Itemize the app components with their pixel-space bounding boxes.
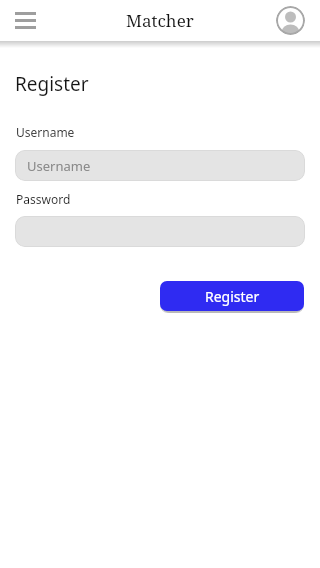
staticText: Username	[27, 157, 91, 175]
button[interactable]	[15, 216, 305, 247]
staticText: Register	[205, 287, 260, 306]
staticText: Matcher	[126, 9, 194, 32]
button[interactable]	[15, 12, 36, 29]
button[interactable]: Register	[160, 281, 304, 311]
button[interactable]: Username	[15, 150, 305, 181]
staticText: Password	[16, 191, 71, 207]
staticText: Register	[15, 71, 89, 97]
button[interactable]	[276, 6, 305, 35]
staticText: Username	[16, 124, 75, 140]
